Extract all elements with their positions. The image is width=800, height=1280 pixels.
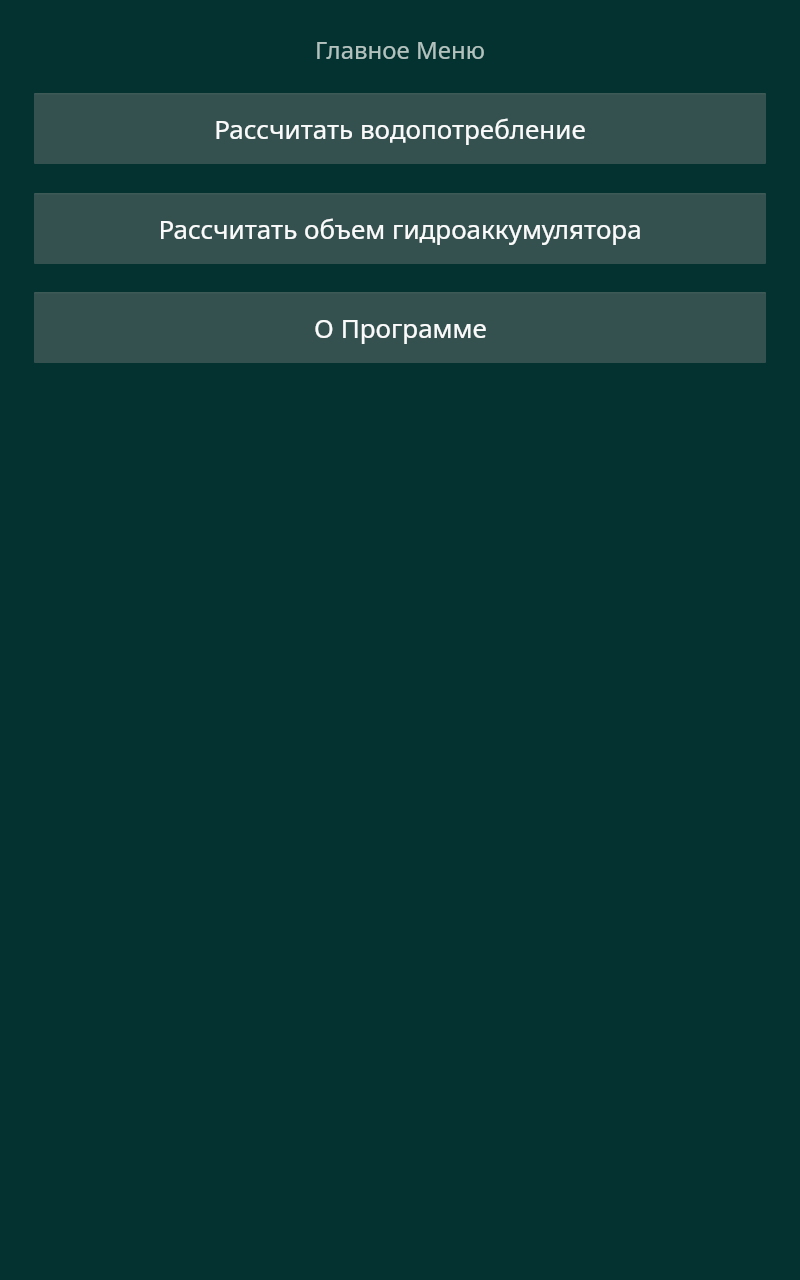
- staticText: Рассчитать водопотребление: [214, 111, 586, 146]
- staticText: О Программе: [314, 310, 487, 345]
- button[interactable]: Рассчитать водопотребление: [34, 93, 766, 164]
- staticText: Главное Меню: [315, 33, 485, 66]
- button[interactable]: О Программе: [34, 292, 766, 363]
- button[interactable]: Рассчитать объем гидроаккумулятора: [34, 193, 766, 264]
- staticText: Рассчитать объем гидроаккумулятора: [158, 211, 642, 246]
